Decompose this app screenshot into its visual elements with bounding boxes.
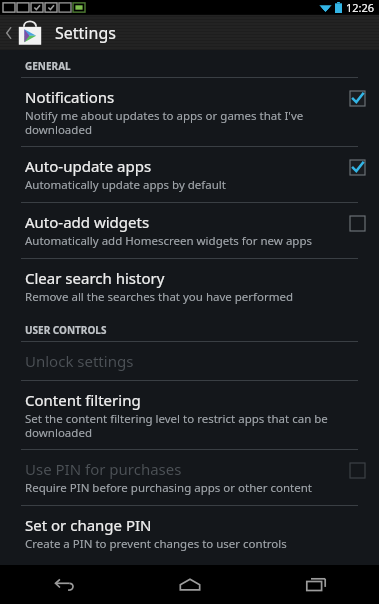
button[interactable]: Home [127,565,253,604]
staticText: Notifications [25,87,115,107]
button[interactable]: Auto-add widgets [0,203,379,258]
staticText: Set the content filtering level to restr… [25,411,365,440]
staticText: Automatically add Homescreen widgets for… [25,233,313,249]
button[interactable]: Auto-update apps checkbox [350,160,365,175]
button[interactable]: Content filtering [0,381,379,449]
button[interactable]: Unlock settings [0,342,379,380]
other: Back [4,26,13,40]
button[interactable]: Notifications [0,78,379,146]
staticText: Create a PIN to prevent changes to user … [25,536,287,552]
staticText: Set or change PIN [25,515,152,535]
button[interactable]: Use PIN for purchases [0,450,379,505]
staticText: 12:26 [346,0,375,15]
staticText: Auto-add widgets [25,212,150,232]
staticText: GENERAL [25,59,71,73]
staticText: Require PIN before purchasing apps or ot… [25,480,312,496]
staticText: USER CONTROLS [25,323,107,337]
button[interactable]: Auto-update apps [0,147,379,202]
button[interactable]: Use PIN for purchases checkbox [350,463,365,478]
button[interactable]: Auto-add widgets checkbox [350,216,365,231]
staticText: Automatically update apps by default [25,177,226,193]
button[interactable]: Recent apps [253,565,379,604]
staticText: Notify me about updates to apps or games… [25,108,340,137]
button[interactable]: Back [0,565,127,604]
button[interactable]: Clear search history [0,259,379,314]
staticText: Auto-update apps [25,156,152,176]
staticText: Settings [55,22,116,44]
button[interactable]: Set or change PIN [0,506,379,561]
button[interactable]: Back [0,15,379,50]
staticText: Unlock settings [25,351,134,371]
button[interactable]: Notifications checkbox [350,91,365,106]
staticText: Clear search history [25,268,165,288]
staticText: Remove all the searches that you have pe… [25,289,294,305]
staticText: Use PIN for purchases [25,459,182,479]
staticText: Content filtering [25,390,141,410]
